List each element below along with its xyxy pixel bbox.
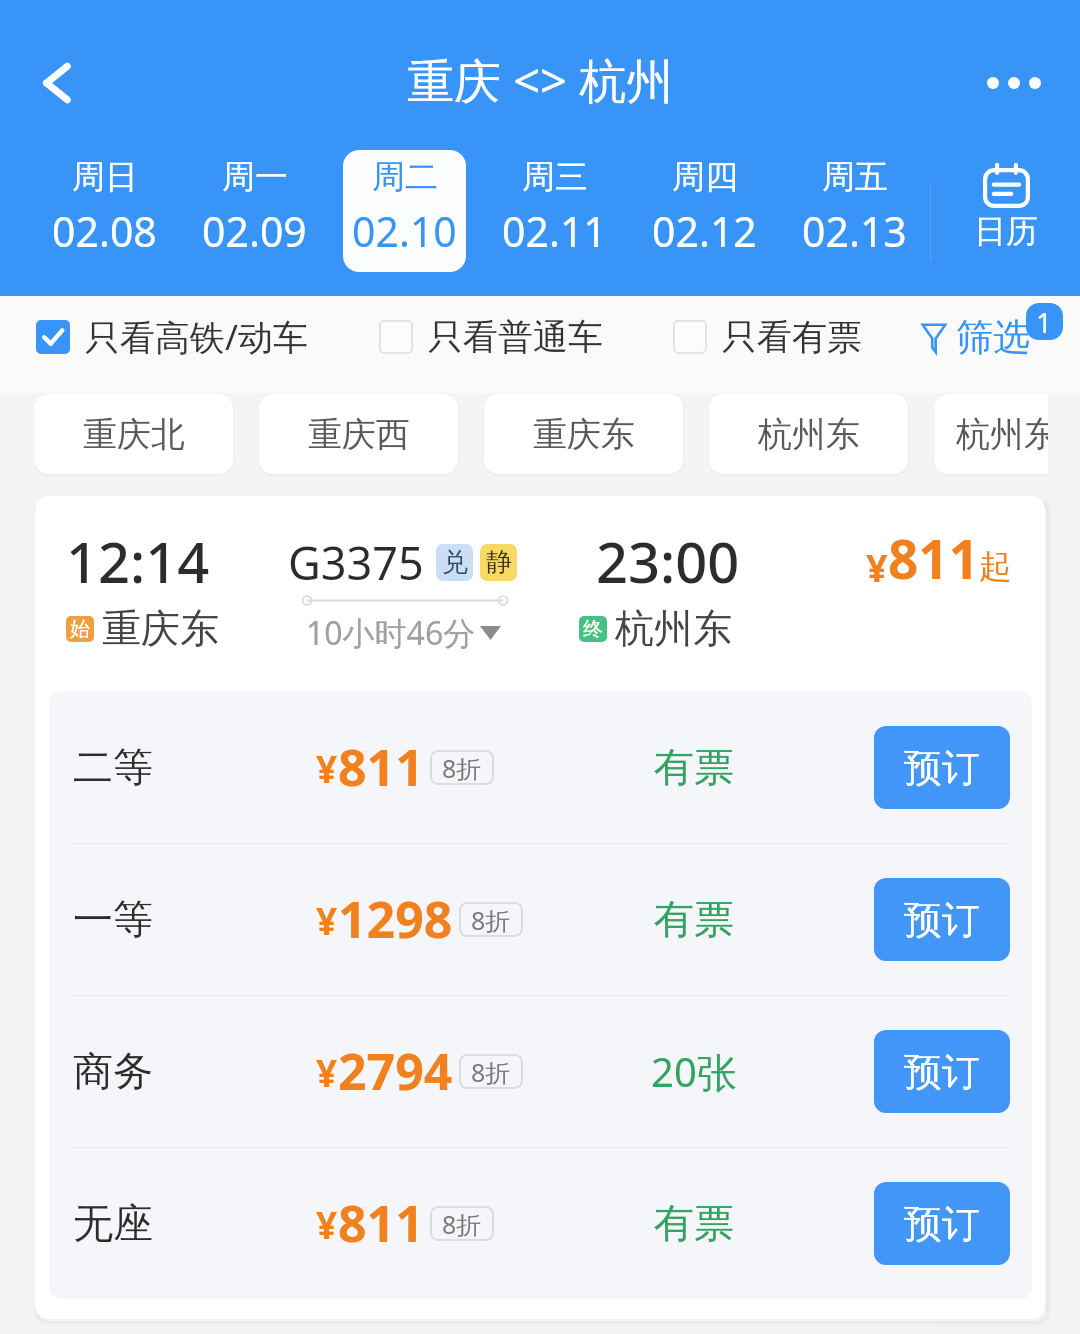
button[interactable]: 周五 <box>793 150 916 272</box>
button[interactable]: 重庆北 <box>34 394 233 474</box>
staticText: 8折 <box>442 1207 482 1241</box>
button[interactable]: 周二 <box>343 150 466 272</box>
staticText: 02.10 <box>352 203 457 259</box>
button[interactable]: More options <box>987 47 1041 119</box>
staticText: 预订 <box>904 1200 980 1248</box>
staticText: 只看普通车 <box>428 315 603 359</box>
staticText: 有票 <box>654 894 734 944</box>
staticText: 02.13 <box>802 203 907 259</box>
button[interactable]: 只看高铁/动车 <box>36 313 309 361</box>
staticText: 无座 <box>73 1198 153 1248</box>
staticText: 静 <box>486 546 512 579</box>
staticText: 预订 <box>904 744 980 792</box>
button[interactable]: 重庆西 <box>259 394 458 474</box>
staticText: 杭州东 <box>758 413 860 456</box>
staticText: 重庆西 <box>308 413 410 456</box>
button[interactable]: 只看普通车 <box>379 315 603 359</box>
button[interactable]: 杭州东 <box>934 394 1080 474</box>
staticText: 重庆东 <box>533 413 635 456</box>
staticText: 02.11 <box>502 203 607 259</box>
staticText: 商务 <box>73 1046 153 1096</box>
staticText: 811 <box>338 1189 424 1257</box>
staticText: 重庆 <> 杭州 <box>407 48 674 112</box>
button[interactable]: 杭州东 <box>709 394 908 474</box>
button[interactable]: 预订 <box>874 1182 1010 1265</box>
staticText: 20张 <box>651 1044 737 1099</box>
staticText: 预订 <box>904 1048 980 1096</box>
staticText: ¥ <box>316 1047 338 1097</box>
staticText: 12:14 <box>66 523 210 599</box>
button[interactable]: 周四 <box>643 150 766 272</box>
staticText: 筛选 <box>956 314 1030 361</box>
button[interactable]: 一等 <box>49 843 1032 995</box>
button[interactable]: 预订 <box>874 1030 1010 1113</box>
staticText: 02.12 <box>652 203 757 259</box>
staticText: 02.09 <box>202 203 307 259</box>
staticText: 日历 <box>974 211 1038 251</box>
staticText: 1298 <box>338 885 453 953</box>
staticText: 一等 <box>73 894 153 944</box>
staticText: 811 <box>338 733 424 801</box>
button[interactable]: Back <box>14 41 98 125</box>
button[interactable]: 预订 <box>874 726 1010 809</box>
staticText: 周三 <box>522 156 588 198</box>
staticText: 周一 <box>222 156 288 198</box>
staticText: 只看有票 <box>722 315 862 359</box>
staticText: 8折 <box>471 903 511 937</box>
staticText: 周五 <box>822 156 888 198</box>
staticText: 杭州东 <box>956 413 1058 456</box>
staticText: ¥ <box>866 541 888 593</box>
staticText: 重庆北 <box>83 413 185 456</box>
button[interactable]: 周一 <box>193 150 316 272</box>
staticText: 预订 <box>904 896 980 944</box>
staticText: 兑 <box>442 546 468 579</box>
staticText: ¥ <box>316 743 338 793</box>
button[interactable]: 筛选 <box>922 314 1030 361</box>
staticText: 周四 <box>672 156 738 198</box>
button[interactable]: 预订 <box>874 878 1010 961</box>
staticText: 10小时46分 <box>306 611 476 655</box>
button[interactable]: 无座 <box>49 1147 1032 1299</box>
staticText: 重庆东 <box>102 604 219 653</box>
staticText: 有票 <box>654 1198 734 1248</box>
staticText: 23:00 <box>596 523 740 599</box>
button[interactable]: 重庆东 <box>484 394 683 474</box>
staticText: 811 <box>888 522 979 594</box>
staticText: 只看高铁/动车 <box>85 313 309 361</box>
staticText: ¥ <box>316 1199 338 1249</box>
staticText: 有票 <box>654 742 734 792</box>
button[interactable]: 周三 <box>493 150 616 272</box>
staticText: 始 <box>70 617 90 642</box>
staticText: 周日 <box>72 156 138 198</box>
button[interactable]: 只看有票 <box>673 315 862 359</box>
staticText: 2794 <box>338 1037 453 1105</box>
staticText: G3375 <box>288 532 424 593</box>
button[interactable]: 二等 <box>49 691 1032 843</box>
staticText: 杭州东 <box>615 604 732 653</box>
staticText: 二等 <box>73 742 153 792</box>
staticText: 终 <box>583 617 603 642</box>
staticText: 8折 <box>442 751 482 785</box>
button[interactable]: 商务 <box>49 995 1032 1147</box>
button[interactable]: Calendar <box>932 142 1080 272</box>
staticText: 1 <box>1036 303 1053 340</box>
button[interactable]: 周日 <box>43 150 166 272</box>
staticText: 周二 <box>372 156 438 198</box>
staticText: 02.08 <box>52 203 157 259</box>
staticText: 8折 <box>471 1055 511 1089</box>
staticText: ¥ <box>316 895 338 945</box>
staticText: 起 <box>979 546 1012 588</box>
